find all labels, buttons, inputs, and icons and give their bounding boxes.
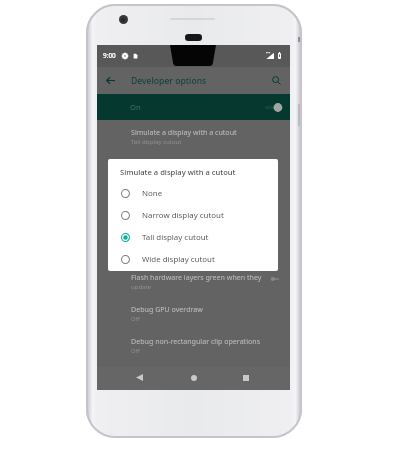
staticText: Debug GPU overdraw xyxy=(131,304,203,314)
staticText: On xyxy=(130,102,141,112)
button[interactable]: Search xyxy=(272,76,281,85)
button[interactable]: Tall display cutout xyxy=(108,226,278,248)
button[interactable]: None xyxy=(108,182,278,204)
staticText: 9:00 xyxy=(103,51,116,60)
staticText: Flash hardware layers green when they xyxy=(131,272,262,282)
staticText: Developer options xyxy=(131,75,207,87)
staticText: Wide display cutout xyxy=(142,254,215,265)
button[interactable]: Home xyxy=(191,375,197,381)
staticText: Off xyxy=(131,315,140,323)
button[interactable]: Debug GPU overdraw xyxy=(97,304,290,326)
button[interactable]: Debug non-rectangular clip operations xyxy=(97,336,290,358)
staticText: update xyxy=(131,283,152,291)
button[interactable]: Back xyxy=(136,374,143,381)
button[interactable]: On xyxy=(97,94,290,120)
button[interactable]: Wide display cutout xyxy=(108,248,278,270)
button[interactable]: Narrow display cutout xyxy=(108,204,278,226)
button[interactable]: Navigate up xyxy=(106,76,115,85)
staticText: Tall display cutout xyxy=(131,138,182,146)
button[interactable]: Simulate a display with a cutout xyxy=(97,127,290,149)
staticText: Off xyxy=(131,347,140,355)
staticText: Debug non-rectangular clip operations xyxy=(131,336,261,346)
staticText: Simulate a display with a cutout xyxy=(131,127,237,137)
staticText: Narrow display cutout xyxy=(142,210,224,221)
staticText: None xyxy=(142,188,163,199)
staticText: Tall display cutout xyxy=(142,232,209,243)
button[interactable]: Flash hardware layers green when they xyxy=(97,272,290,294)
staticText: Simulate a display with a cutout xyxy=(120,167,236,177)
